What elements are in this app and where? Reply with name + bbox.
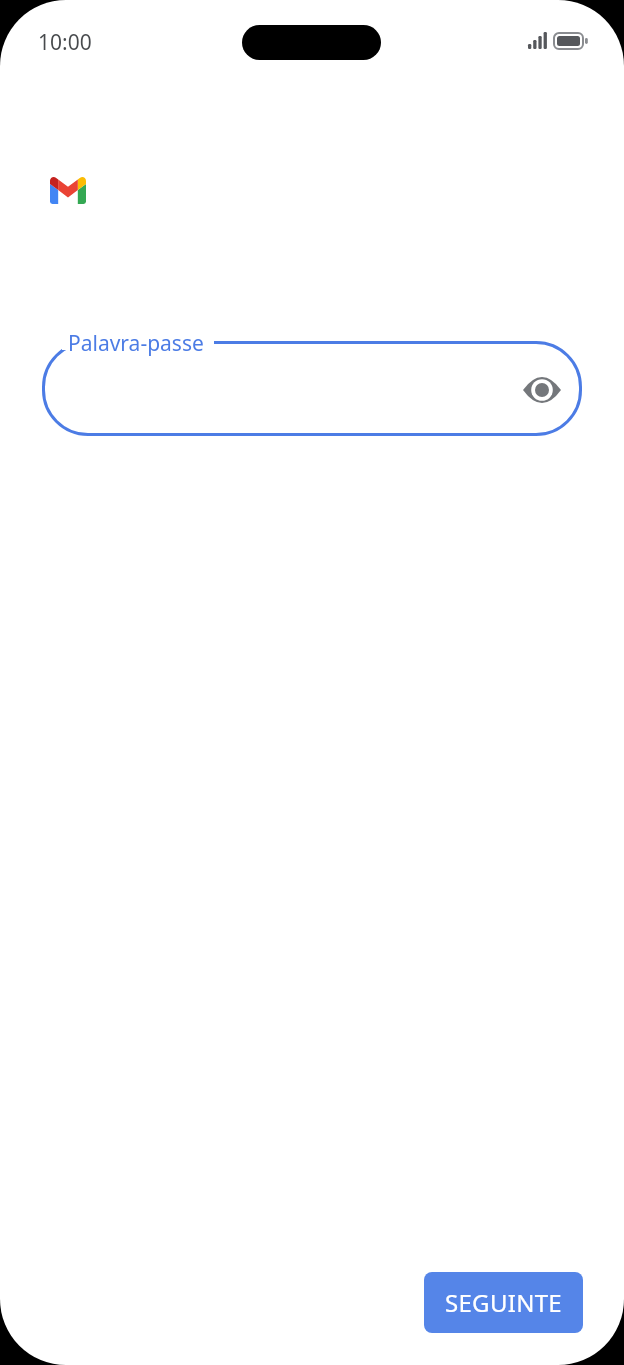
- staticText: 10:00: [38, 28, 92, 57]
- staticText: Palavra-passe: [68, 329, 204, 358]
- button[interactable]: SEGUINTE: [424, 1272, 583, 1333]
- button[interactable]: [511, 359, 573, 421]
- button[interactable]: [42, 341, 582, 436]
- staticText: SEGUINTE: [445, 1286, 562, 1319]
